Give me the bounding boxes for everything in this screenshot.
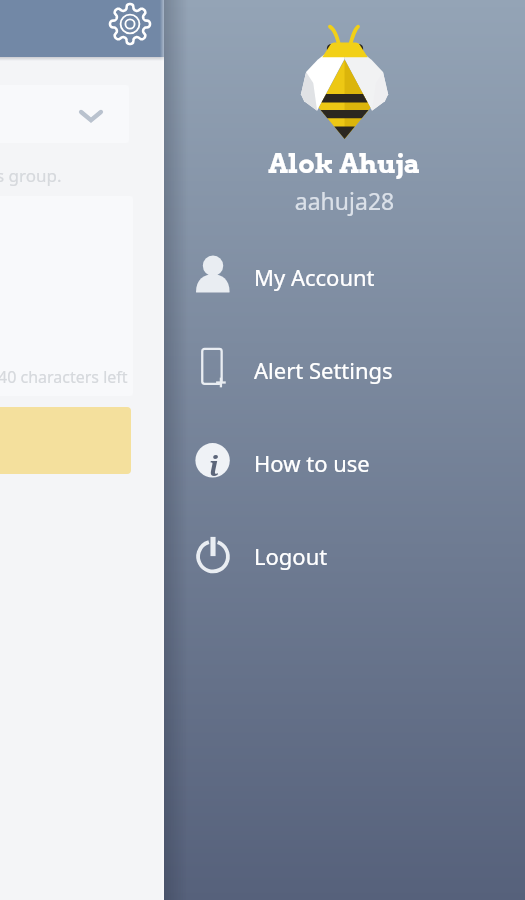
staticText: i <box>209 447 219 484</box>
staticText: s group. <box>0 164 62 187</box>
staticText: 40 characters left <box>0 366 128 388</box>
button[interactable]: Alert Settings <box>164 323 525 416</box>
staticText: My Account <box>254 262 375 292</box>
staticText: Alok Ahuja <box>164 147 525 180</box>
button[interactable] <box>0 85 129 143</box>
staticText: aahuja28 <box>164 185 525 216</box>
staticText: Alert Settings <box>254 355 393 385</box>
button[interactable]: Settings <box>107 1 153 47</box>
staticText: Logout <box>254 541 328 571</box>
button[interactable]: My Account <box>164 230 525 323</box>
button[interactable]: i <box>164 416 525 509</box>
staticText: How to use <box>254 448 370 478</box>
button[interactable]: Logout <box>164 509 525 602</box>
